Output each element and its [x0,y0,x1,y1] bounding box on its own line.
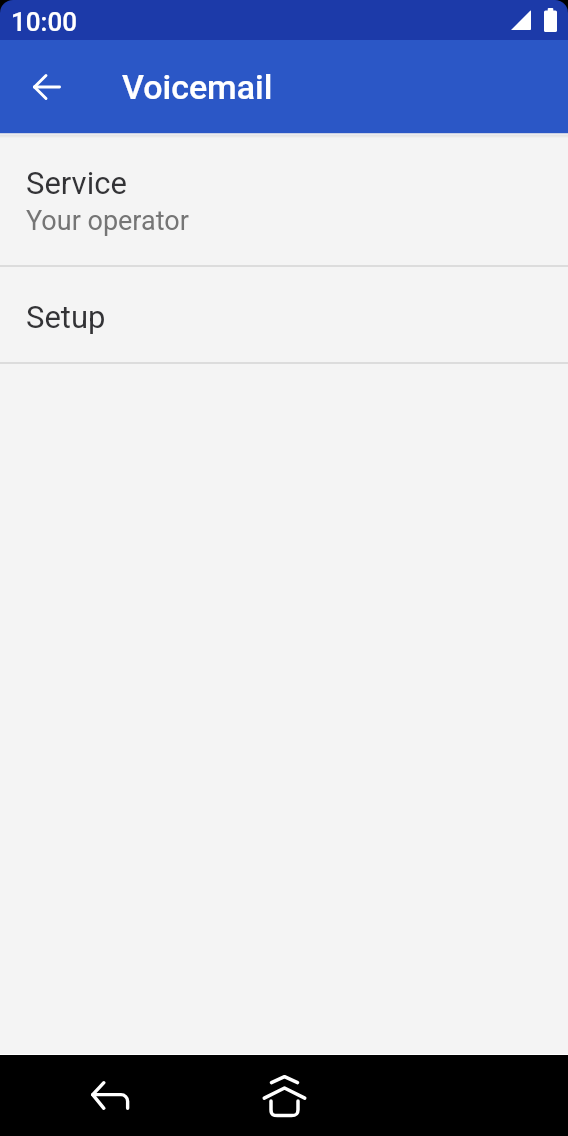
button[interactable]: Service [0,133,568,265]
staticText: Setup [26,299,106,335]
staticText: Voicemail [122,67,273,107]
staticText: Service [26,165,127,201]
button[interactable]: Navigate up [19,59,75,115]
button[interactable]: Setup [0,267,568,362]
staticText: Your operator [26,205,189,237]
button[interactable]: Back [0,1055,220,1136]
staticText: 10:00 [11,7,77,37]
button[interactable]: Home [220,1055,348,1136]
